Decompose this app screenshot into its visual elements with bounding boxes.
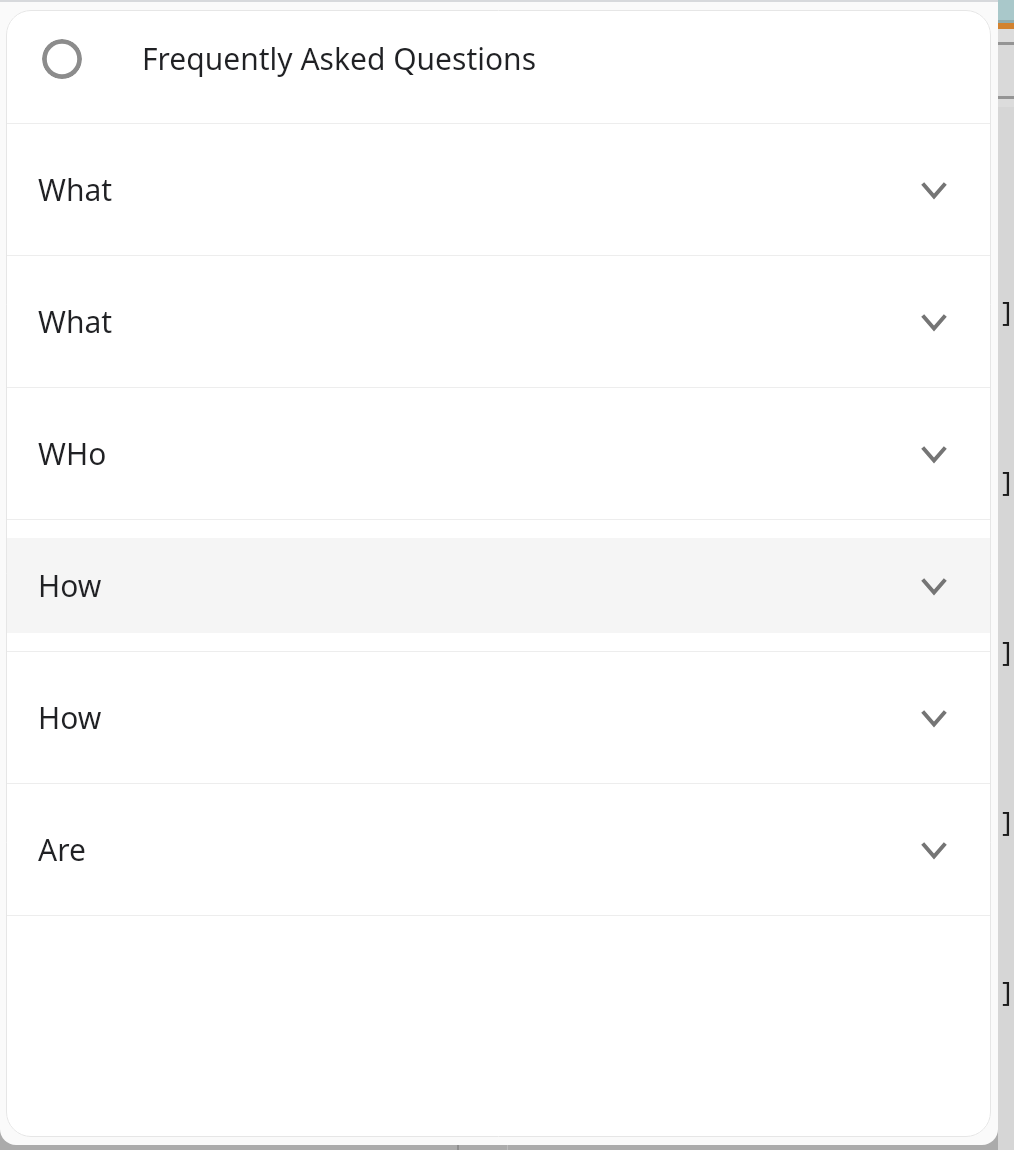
- other: Expand WHo: [919, 439, 949, 469]
- staticText: How: [38, 697, 102, 738]
- staticText: What: [38, 169, 113, 210]
- button[interactable]: What: [6, 124, 991, 255]
- button[interactable]: How: [6, 652, 991, 783]
- other: Expand How: [919, 703, 949, 733]
- staticText: How: [38, 565, 102, 606]
- staticText: ]: [999, 292, 1014, 330]
- staticText: What: [38, 301, 113, 342]
- button[interactable]: How: [6, 520, 991, 651]
- other: Expand How: [919, 571, 949, 601]
- button[interactable]: What: [6, 256, 991, 387]
- other: Expand Are: [919, 835, 949, 865]
- other: Expand What: [919, 307, 949, 337]
- staticText: ]: [999, 802, 1014, 840]
- staticText: Are: [38, 829, 86, 870]
- button[interactable]: Are: [6, 784, 991, 915]
- button[interactable]: WHo: [6, 388, 991, 519]
- staticText: Frequently Asked Questions: [142, 38, 537, 79]
- other: Expand What: [919, 175, 949, 205]
- staticText: ]: [999, 462, 1014, 500]
- button[interactable]: Help: [42, 39, 82, 79]
- staticText: WHo: [38, 433, 107, 474]
- staticText: ]: [999, 632, 1014, 670]
- staticText: ]: [999, 972, 1014, 1010]
